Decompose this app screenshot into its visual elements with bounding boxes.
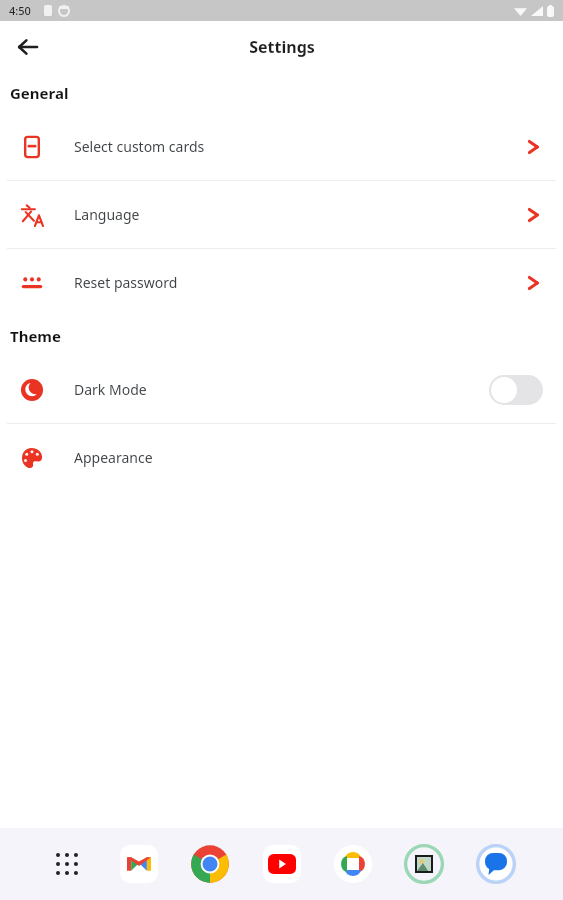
staticText: General xyxy=(10,83,69,103)
button[interactable]: Gmail xyxy=(117,842,161,886)
button[interactable]: Dark Mode toggle xyxy=(489,375,543,405)
button[interactable]: YouTube xyxy=(260,842,304,886)
staticText: Settings xyxy=(249,36,315,58)
staticText: Dark Mode xyxy=(74,380,147,399)
button[interactable]: Appearance xyxy=(0,424,563,491)
button[interactable]: Language xyxy=(0,181,563,248)
staticText: Appearance xyxy=(74,448,153,467)
button[interactable]: Messages xyxy=(474,842,518,886)
button[interactable]: Dark Mode xyxy=(0,356,563,423)
staticText: Select custom cards xyxy=(74,137,205,156)
staticText: 4:50 xyxy=(9,3,31,18)
staticText: Language xyxy=(74,205,140,224)
button[interactable]: Reset password xyxy=(0,249,563,316)
button[interactable]: Gallery xyxy=(402,842,446,886)
button[interactable]: All apps xyxy=(45,842,89,886)
button[interactable]: Photos xyxy=(331,842,375,886)
button[interactable]: Back xyxy=(8,27,48,67)
button[interactable]: Select custom cards xyxy=(0,113,563,180)
button[interactable]: Chrome xyxy=(188,842,232,886)
staticText: Theme xyxy=(10,326,61,346)
staticText: Reset password xyxy=(74,273,178,292)
